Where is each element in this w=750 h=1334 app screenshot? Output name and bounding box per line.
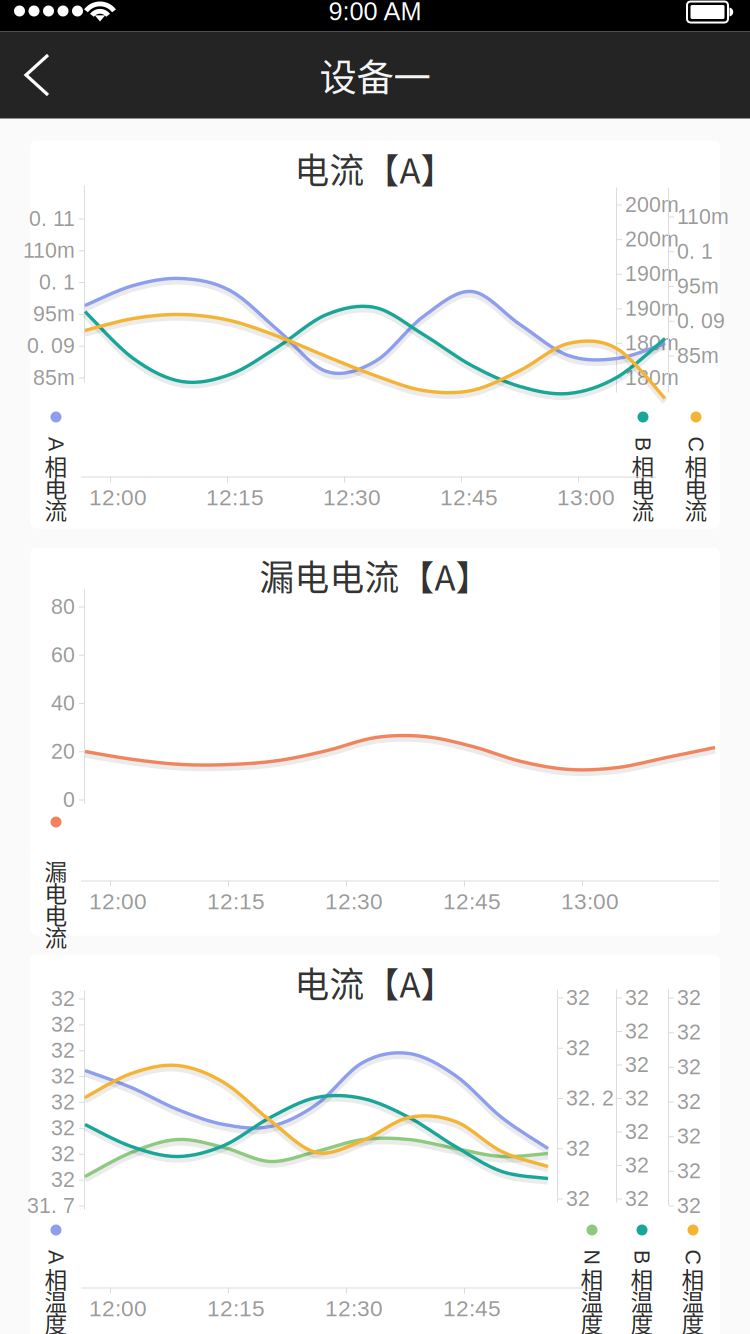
staticText: 相 bbox=[44, 449, 67, 482]
staticText: 度 bbox=[44, 1306, 67, 1334]
staticText: 度 bbox=[580, 1306, 603, 1334]
staticText: 12:00 bbox=[89, 1296, 147, 1321]
staticText: 60 bbox=[51, 643, 75, 667]
staticText: 相 bbox=[630, 1262, 653, 1295]
staticText: 32 bbox=[625, 986, 649, 1009]
staticText: 电 bbox=[631, 471, 654, 504]
staticText: 流 bbox=[44, 493, 67, 526]
staticText: 9:00 AM bbox=[328, 0, 421, 26]
staticText: 32 bbox=[51, 1168, 75, 1191]
staticText: 80 bbox=[51, 595, 75, 618]
staticText: 32 bbox=[51, 1064, 75, 1088]
staticText: 电 bbox=[44, 898, 67, 931]
staticText: 32 bbox=[625, 1187, 649, 1210]
staticText: 32 bbox=[677, 1159, 701, 1183]
staticText: 13:00 bbox=[557, 485, 615, 510]
staticText: 12:45 bbox=[443, 1296, 501, 1321]
staticText: 12:15 bbox=[207, 1296, 265, 1321]
staticText: 漏电电流【A】 bbox=[259, 550, 490, 601]
staticText: 0. 09 bbox=[27, 334, 75, 358]
staticText: B bbox=[635, 1245, 649, 1269]
staticText: A bbox=[49, 432, 63, 456]
staticText: 12:30 bbox=[323, 485, 381, 510]
staticText: 12:45 bbox=[440, 485, 498, 510]
staticText: 32 bbox=[677, 1055, 701, 1079]
staticText: 12:15 bbox=[206, 485, 264, 510]
staticText: 12:30 bbox=[325, 889, 383, 914]
staticText: 190m bbox=[625, 296, 679, 320]
staticText: 电 bbox=[684, 471, 707, 504]
staticText: 电流【A】 bbox=[294, 143, 455, 194]
staticText: 0. 09 bbox=[677, 309, 725, 333]
staticText: 85m bbox=[677, 344, 719, 367]
staticText: 200m bbox=[625, 227, 679, 251]
staticText: 0. 1 bbox=[39, 270, 75, 294]
staticText: 32. 2 bbox=[566, 1086, 614, 1110]
staticText: 32 bbox=[51, 1142, 75, 1166]
staticText: 相 bbox=[681, 1262, 704, 1295]
staticText: 32 bbox=[566, 1187, 590, 1210]
staticText: A bbox=[49, 1245, 63, 1269]
staticText: 200m bbox=[625, 193, 679, 216]
staticText: 12:00 bbox=[89, 485, 147, 510]
staticText: 电 bbox=[44, 876, 67, 909]
staticText: 12:15 bbox=[207, 889, 265, 914]
staticText: 电 bbox=[44, 471, 67, 504]
staticText: 110m bbox=[677, 205, 729, 228]
staticText: 95m bbox=[33, 302, 75, 326]
staticText: 相 bbox=[44, 1262, 67, 1295]
staticText: 流 bbox=[631, 493, 654, 526]
staticText: 相 bbox=[580, 1262, 603, 1295]
staticText: 温 bbox=[681, 1284, 704, 1317]
staticText: 电流【A】 bbox=[294, 957, 455, 1008]
staticText: 190m bbox=[625, 262, 679, 286]
staticText: 13:00 bbox=[561, 889, 619, 914]
staticText: 31. 7 bbox=[27, 1194, 75, 1217]
staticText: 32 bbox=[677, 986, 701, 1009]
staticText: 32 bbox=[566, 1036, 590, 1060]
staticText: B bbox=[636, 432, 650, 456]
staticText: 温 bbox=[580, 1284, 603, 1317]
staticText: 32 bbox=[625, 1053, 649, 1076]
staticText: 32 bbox=[625, 1019, 649, 1043]
staticText: 12:00 bbox=[89, 889, 147, 914]
staticText: 40 bbox=[51, 691, 75, 715]
staticText: 32 bbox=[51, 1012, 75, 1036]
staticText: 20 bbox=[51, 739, 75, 763]
staticText: 180m bbox=[625, 366, 679, 389]
staticText: 180m bbox=[625, 331, 679, 355]
staticText: 32 bbox=[51, 1038, 75, 1062]
staticText: 32 bbox=[677, 1124, 701, 1148]
staticText: 0 bbox=[63, 788, 75, 811]
staticText: 32 bbox=[566, 1136, 590, 1160]
staticText: 32 bbox=[625, 1120, 649, 1143]
staticText: 12:30 bbox=[325, 1296, 383, 1321]
staticText: 12:45 bbox=[443, 889, 501, 914]
staticText: C bbox=[685, 1245, 700, 1269]
staticText: 相 bbox=[631, 449, 654, 482]
staticText: 0. 11 bbox=[29, 207, 75, 230]
staticText: 温 bbox=[44, 1284, 67, 1317]
staticText: 32 bbox=[625, 1153, 649, 1177]
staticText: C bbox=[688, 432, 703, 456]
staticText: 32 bbox=[677, 1194, 701, 1217]
staticText: 相 bbox=[684, 449, 707, 482]
staticText: 流 bbox=[44, 920, 67, 953]
staticText: 设备一 bbox=[319, 48, 430, 102]
staticText: 32 bbox=[566, 986, 590, 1009]
staticText: 流 bbox=[684, 493, 707, 526]
staticText: 度 bbox=[630, 1306, 653, 1334]
staticText: 温 bbox=[630, 1284, 653, 1317]
staticText: 32 bbox=[677, 1090, 701, 1113]
staticText: 漏 bbox=[44, 854, 67, 887]
staticText: 32 bbox=[51, 1090, 75, 1114]
staticText: 95m bbox=[677, 274, 719, 298]
staticText: 110m bbox=[23, 238, 75, 262]
staticText: 85m bbox=[33, 366, 75, 389]
staticText: 度 bbox=[681, 1306, 704, 1334]
staticText: 0. 1 bbox=[677, 239, 713, 263]
staticText: 32 bbox=[51, 1116, 75, 1140]
staticText: N bbox=[584, 1245, 599, 1269]
staticText: 32 bbox=[625, 1086, 649, 1110]
button[interactable]: Back bbox=[0, 28, 78, 122]
